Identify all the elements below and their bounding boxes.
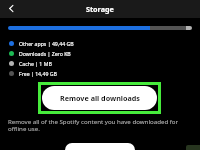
button[interactable]: Remove all downloads xyxy=(42,86,157,110)
staticText: Remove all downloads xyxy=(60,93,140,103)
staticText: Downloads | Zero KB xyxy=(19,50,71,57)
staticText: Storage xyxy=(86,4,114,14)
staticText: Other apps | 49,44 GB xyxy=(19,40,74,47)
staticText: Free | 14,49 GB xyxy=(19,70,57,77)
button[interactable]: Back xyxy=(2,0,20,17)
staticText: Cache | 1 MB xyxy=(19,60,52,67)
staticText: Remove all of the Spotify content you ha… xyxy=(8,117,192,133)
